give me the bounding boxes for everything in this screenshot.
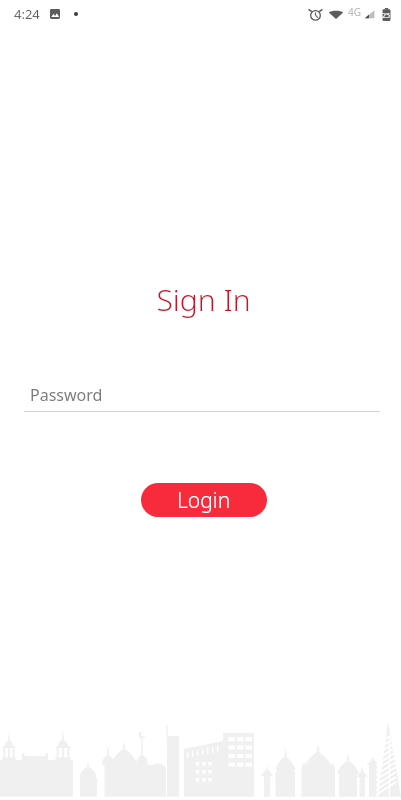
staticText: 4:24 <box>14 5 40 23</box>
staticText: 25 <box>382 11 391 21</box>
staticText: Login <box>177 486 231 515</box>
button[interactable]: Login <box>141 483 267 517</box>
button[interactable]: Password <box>30 384 386 412</box>
staticText: 4G <box>348 5 361 19</box>
staticText: Sign In <box>3 279 401 320</box>
staticText: Password <box>30 384 103 406</box>
